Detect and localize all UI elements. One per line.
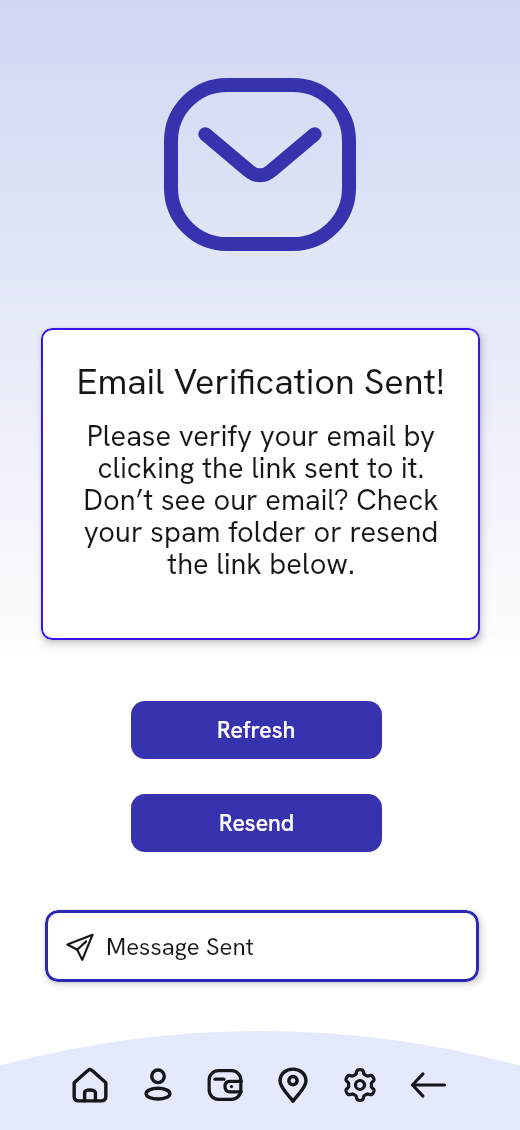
button[interactable]: Back [400,1063,456,1107]
staticText: Please verify your email by clicking the… [83,417,439,582]
staticText: Message Sent [106,931,254,962]
button[interactable]: Settings [332,1063,388,1107]
button[interactable]: Message Sent [45,910,479,982]
button[interactable]: Refresh [131,701,382,759]
button[interactable]: Home [62,1063,118,1107]
button[interactable]: Profile [130,1063,186,1107]
staticText: Resend [219,808,295,838]
button[interactable]: Resend [131,794,382,852]
button[interactable]: Wallet [197,1063,253,1107]
staticText: Refresh [217,715,296,745]
button[interactable]: Location [265,1063,321,1107]
staticText: Email Verification Sent! [76,358,445,405]
